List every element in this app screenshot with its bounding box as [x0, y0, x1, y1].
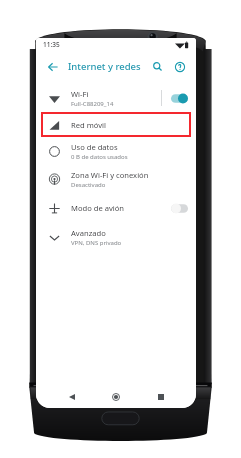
button[interactable]: Recent apps [152, 388, 170, 406]
staticText: Wi-Fi [71, 89, 89, 99]
button[interactable]: Turn on [171, 203, 188, 214]
staticText: Desactivado [71, 181, 106, 189]
button[interactable]: Uso de datos [36, 137, 196, 165]
staticText: Uso de datos [71, 142, 118, 152]
button[interactable]: Avanzado [36, 223, 196, 251]
button[interactable]: Zona Wi-Fi y conexión [36, 165, 196, 193]
button[interactable]: Wi-Fi [36, 84, 196, 112]
button[interactable]: Modo de avión [36, 193, 196, 223]
button[interactable]: Red móvil [41, 112, 191, 137]
button[interactable]: Back [63, 388, 81, 406]
staticText: VPN, DNS privado [71, 239, 122, 247]
staticText: 0 B de datos usados [71, 153, 128, 161]
button[interactable]: Turn off [171, 93, 188, 104]
staticText: Avanzado [71, 228, 106, 238]
button[interactable]: Help [171, 58, 188, 75]
staticText: Red móvil [71, 120, 106, 130]
staticText: 11:35 [43, 40, 60, 49]
staticText: Internet y redes [68, 60, 141, 73]
button[interactable]: Home [107, 388, 125, 406]
staticText: Modo de avión [71, 203, 125, 213]
staticText: Zona Wi-Fi y conexión [71, 170, 149, 180]
staticText: Full-C88209_14 [71, 100, 114, 108]
button[interactable]: Search [149, 58, 166, 75]
button[interactable]: Back [44, 58, 61, 75]
